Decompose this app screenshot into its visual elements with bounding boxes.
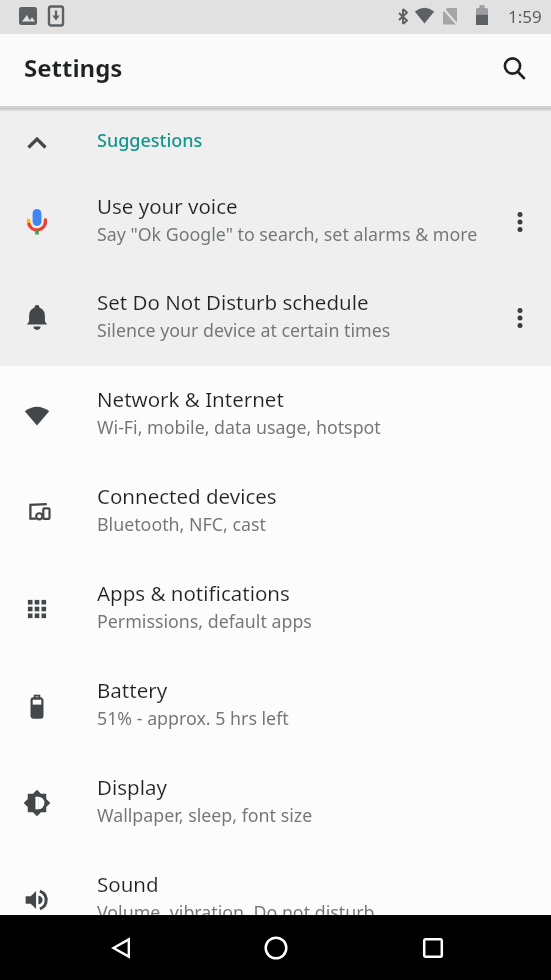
staticText: Sound (97, 870, 159, 898)
staticText: Say "Ok Google" to search, set alarms & … (97, 222, 478, 246)
button[interactable] (488, 270, 551, 366)
staticText: Connected devices (97, 482, 277, 510)
staticText: Wi-Fi, mobile, data usage, hotspot (97, 415, 381, 439)
button[interactable] (488, 174, 551, 270)
staticText: 1:59 (508, 5, 542, 28)
staticText: Bluetooth, NFC, cast (97, 512, 266, 536)
button[interactable]: Battery (0, 657, 551, 754)
staticText: Wallpaper, sleep, font size (97, 803, 313, 827)
staticText: Network & Internet (97, 385, 284, 413)
staticText: Use your voice (97, 192, 238, 220)
button[interactable]: Set Do Not Disturb schedule (0, 270, 551, 366)
button[interactable] (501, 57, 527, 83)
button[interactable]: Suggestions (0, 112, 551, 174)
staticText: Suggestions (97, 128, 203, 153)
staticText: Permissions, default apps (97, 609, 312, 633)
staticText: Settings (24, 51, 123, 84)
button[interactable]: Network & Internet (0, 366, 551, 463)
staticText: Battery (97, 676, 168, 704)
button[interactable]: Use your voice (0, 174, 551, 270)
staticText: Volume, vibration, Do not disturb (97, 900, 375, 924)
button[interactable] (252, 924, 300, 972)
button[interactable]: Connected devices (0, 463, 551, 560)
staticText: 51% - approx. 5 hrs left (97, 706, 289, 730)
button[interactable]: Sound (0, 851, 551, 948)
button[interactable] (409, 924, 457, 972)
staticText: Set Do Not Disturb schedule (97, 288, 369, 316)
staticText: Silence your device at certain times (97, 318, 391, 342)
button[interactable]: Display (0, 754, 551, 851)
button[interactable] (97, 924, 145, 972)
staticText: Apps & notifications (97, 579, 290, 607)
button[interactable]: Apps & notifications (0, 560, 551, 657)
staticText: Display (97, 773, 167, 801)
